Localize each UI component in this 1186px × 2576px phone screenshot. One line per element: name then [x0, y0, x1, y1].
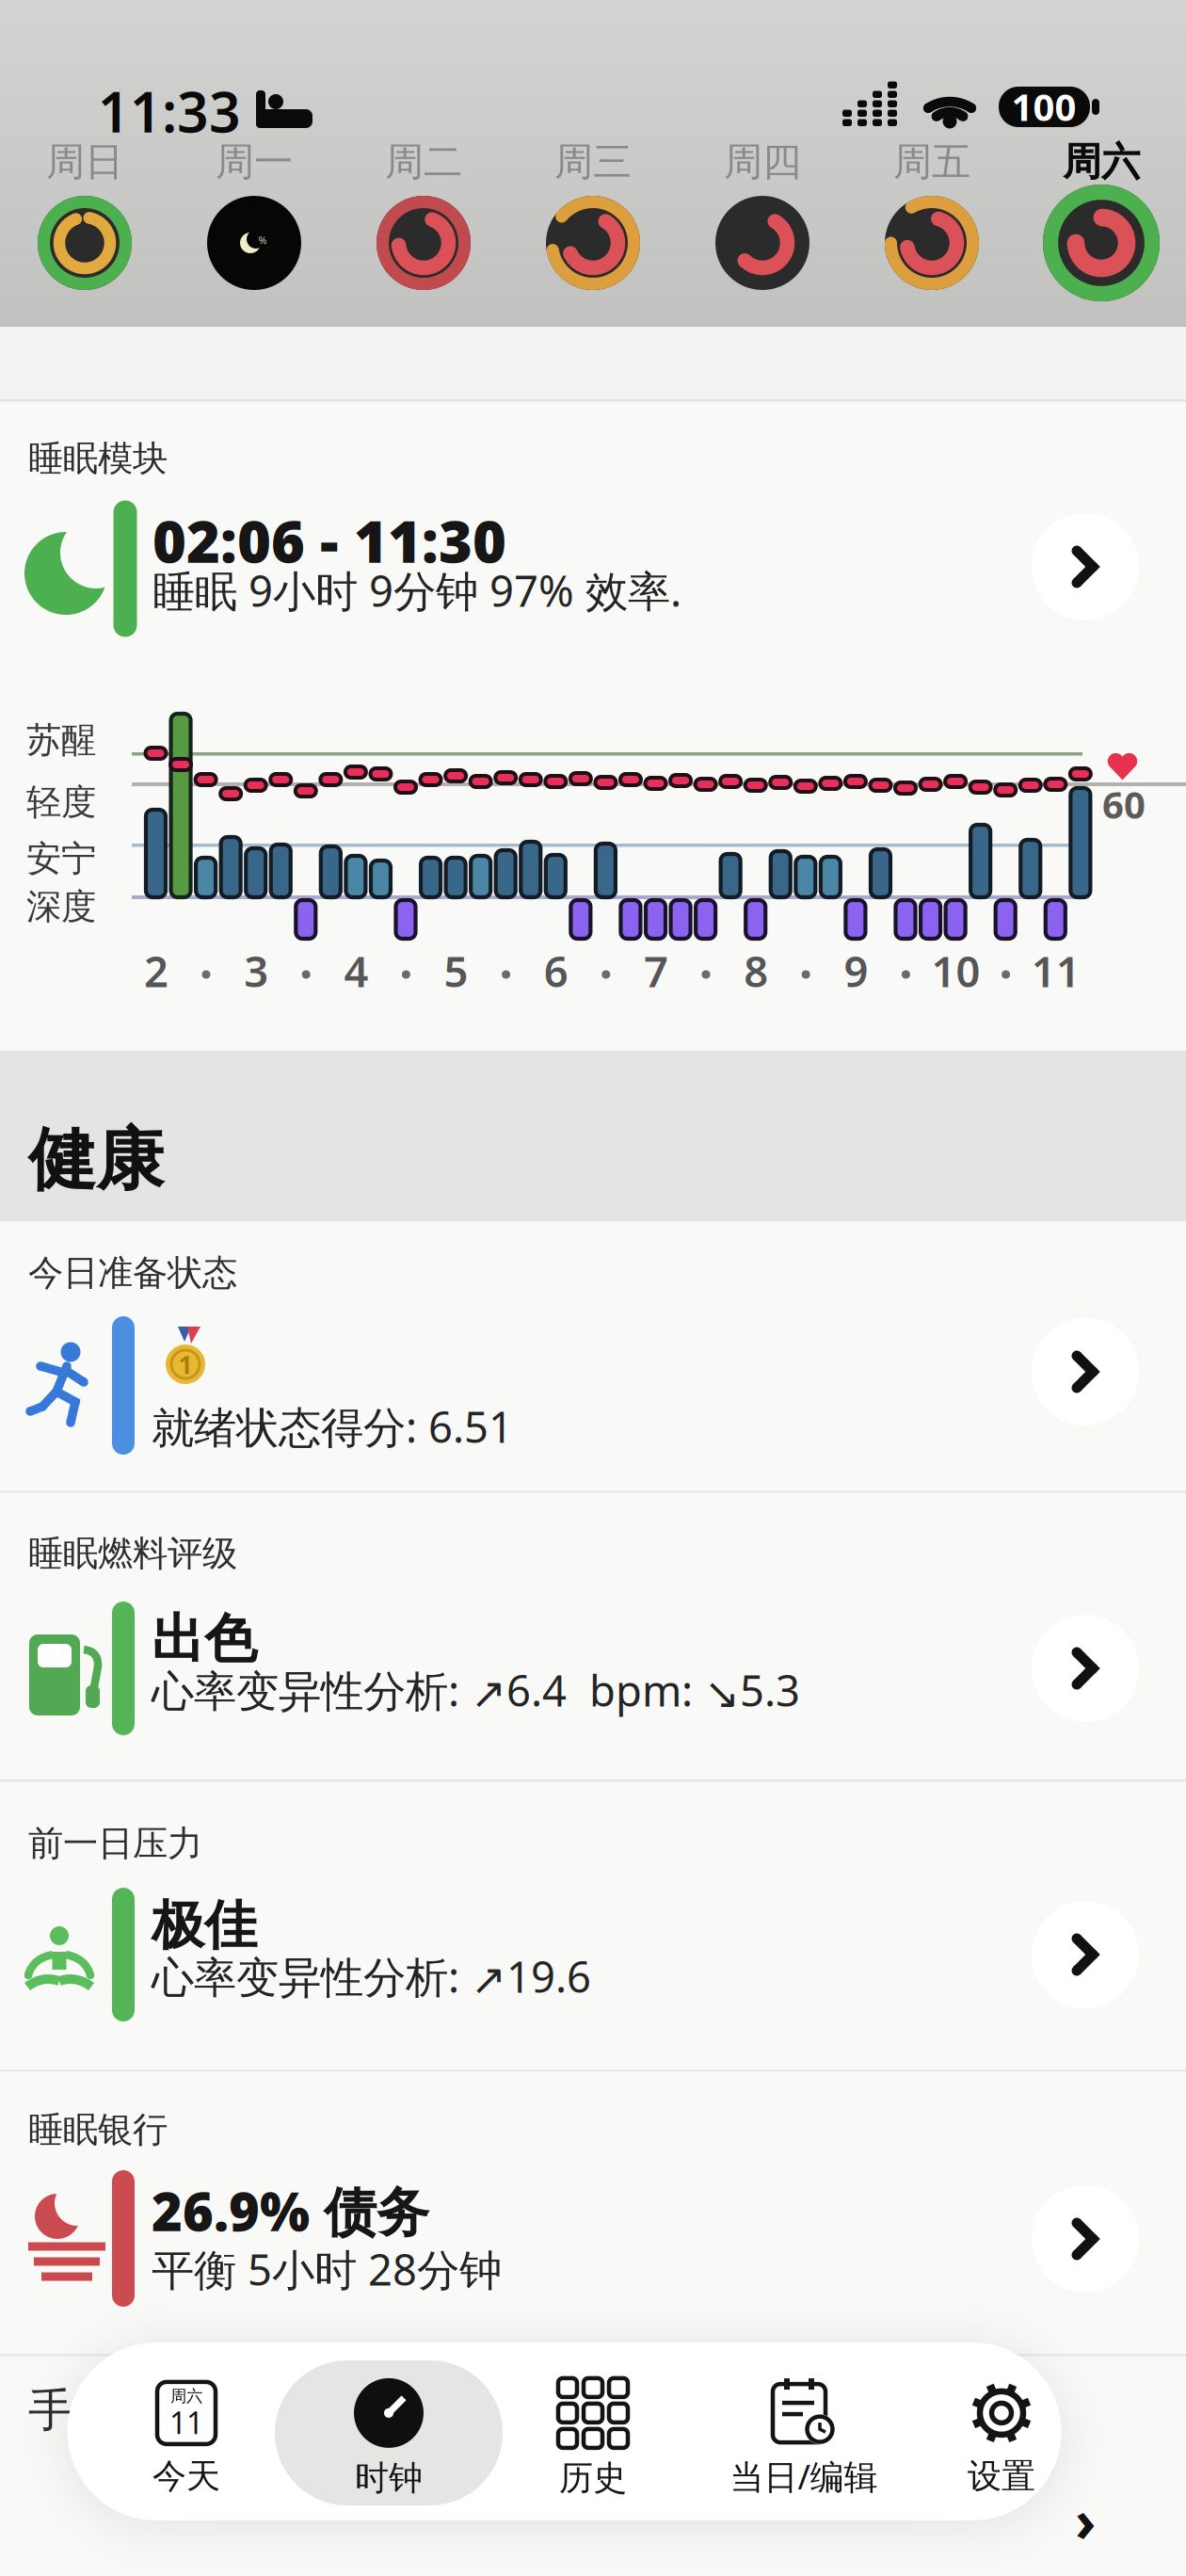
staticText: 10: [931, 942, 980, 999]
staticText: 周五: [893, 138, 970, 186]
button[interactable]: 02:06 - 11:30: [28, 494, 1158, 645]
staticText: 手: [28, 2383, 73, 2438]
staticText: 今天: [152, 2455, 220, 2497]
button[interactable]: 就绪状态得分: 6.51: [0, 1243, 1186, 1525]
staticText: 睡眠银行: [28, 2108, 168, 2151]
button[interactable]: 当日/编辑: [696, 2368, 912, 2509]
staticText: 11:33: [98, 74, 241, 148]
button[interactable]: 周六: [78, 2368, 295, 2509]
button[interactable]: 出色: [0, 1527, 1186, 1810]
staticText: 周六: [1063, 138, 1140, 186]
staticText: 就绪状态得分: 6.51: [152, 1398, 513, 1455]
staticText: 周六: [170, 2386, 202, 2406]
staticText: 8: [744, 942, 768, 999]
staticText: 睡眠模块: [28, 437, 168, 480]
staticText: 3: [244, 942, 268, 999]
button[interactable]: 周五: [852, 137, 1012, 351]
button[interactable]: 极佳: [0, 1813, 1186, 2096]
staticText: 历史: [559, 2457, 627, 2499]
button[interactable]: 周三: [513, 137, 673, 351]
button[interactable]: 历史: [485, 2368, 701, 2509]
staticText: 健康: [28, 1118, 164, 1202]
button[interactable]: 设置: [893, 2368, 1110, 2509]
staticText: 02:06 - 11:30: [152, 502, 506, 579]
staticText: 苏醒: [26, 718, 96, 762]
staticText: ›: [1075, 2481, 1096, 2558]
staticText: 心率变异性分析: ↗19.6: [152, 1948, 591, 2005]
button[interactable]: 周六: [1021, 137, 1181, 351]
staticText: 轻度: [26, 781, 96, 824]
staticText: 心率变异性分析: ↗6.4 bpm: ↘5.3: [152, 1662, 800, 1718]
staticText: 4: [344, 942, 368, 999]
staticText: 1: [178, 1348, 192, 1381]
staticText: 周一: [216, 138, 293, 186]
staticText: 极佳: [152, 1893, 257, 1958]
staticText: 2: [144, 942, 168, 999]
staticText: 11: [1031, 942, 1080, 999]
staticText: 周日: [46, 138, 123, 186]
staticText: 周三: [554, 138, 632, 186]
staticText: 前一日压力: [28, 1822, 202, 1865]
staticText: 安宁: [26, 837, 96, 880]
staticText: 26.9% 债务: [152, 2176, 429, 2246]
staticText: 5: [444, 942, 468, 999]
staticText: 睡眠 9小时 9分钟 97% 效率.: [152, 562, 681, 619]
staticText: 设置: [968, 2455, 1035, 2497]
button[interactable]: 周二: [344, 137, 504, 351]
button[interactable]: 周四: [682, 137, 842, 351]
staticText: 9: [844, 942, 868, 999]
staticText: 深度: [26, 885, 96, 928]
staticText: 当日/编辑: [730, 2454, 878, 2499]
staticText: 睡眠燃料评级: [28, 1532, 237, 1575]
staticText: 7: [644, 942, 668, 999]
staticText: 11: [169, 2402, 203, 2442]
staticText: 出色: [152, 1607, 257, 1672]
button[interactable]: 周日: [5, 137, 165, 351]
staticText: %: [258, 233, 267, 247]
staticText: 60: [1102, 779, 1146, 829]
button[interactable]: 手: [28, 2326, 1158, 2542]
button[interactable]: 周一: [174, 137, 334, 351]
button[interactable]: 时钟: [280, 2368, 497, 2509]
staticText: 周四: [724, 138, 801, 186]
button[interactable]: 26.9% 债务: [0, 2098, 1186, 2380]
staticText: 平衡 5小时 28分钟: [152, 2241, 502, 2297]
staticText: 今日准备状态: [28, 1251, 237, 1295]
staticText: 周二: [385, 138, 462, 186]
staticText: 6: [544, 942, 568, 999]
staticText: 时钟: [355, 2457, 423, 2499]
staticText: 100: [1011, 81, 1076, 131]
